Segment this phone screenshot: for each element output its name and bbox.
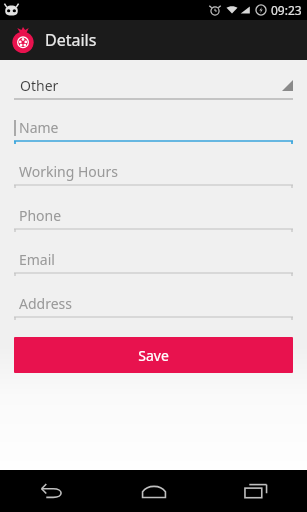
staticText: Save <box>138 346 169 365</box>
button[interactable]: Email <box>14 247 293 276</box>
button[interactable]: Recent apps <box>205 470 307 512</box>
button[interactable]: Address <box>14 291 293 320</box>
staticText: Other <box>20 76 59 95</box>
button[interactable]: Phone <box>14 203 293 232</box>
button[interactable]: Back <box>0 470 103 512</box>
staticText: Address <box>19 294 72 313</box>
button[interactable]: Save <box>14 337 293 373</box>
button[interactable]: Name <box>14 115 293 144</box>
staticText: 09:23 <box>271 2 302 18</box>
staticText: Email <box>19 250 55 269</box>
staticText: Name <box>19 118 59 137</box>
button[interactable]: Home <box>103 470 205 512</box>
staticText: Working Hours <box>19 162 118 181</box>
button[interactable]: Working Hours <box>14 159 293 188</box>
staticText: Phone <box>19 206 62 225</box>
button[interactable]: App logo <box>9 26 37 54</box>
staticText: Details <box>45 29 97 51</box>
button[interactable]: Other <box>14 73 293 100</box>
